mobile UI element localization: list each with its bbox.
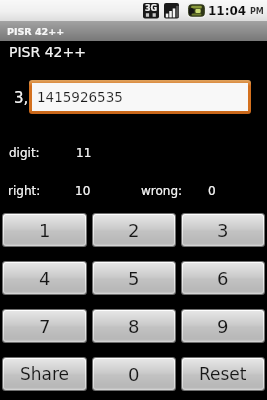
- staticText: 8: [128, 316, 140, 337]
- button[interactable]: 4: [4, 263, 85, 293]
- button[interactable]: 5: [94, 263, 174, 293]
- button[interactable]: 9: [183, 311, 263, 341]
- staticText: 0: [208, 184, 216, 198]
- staticText: 5: [128, 268, 140, 289]
- staticText: 7: [39, 316, 51, 337]
- button[interactable]: 0: [94, 359, 174, 389]
- staticText: PM: [250, 7, 264, 16]
- staticText: 3,: [14, 89, 29, 106]
- button[interactable]: 7: [4, 311, 85, 341]
- staticText: 10: [75, 184, 91, 198]
- staticText: 0: [128, 364, 140, 385]
- staticText: PISR 42++: [7, 26, 65, 37]
- staticText: digit:: [9, 146, 40, 160]
- button[interactable]: 3: [183, 215, 263, 245]
- button[interactable]: 1: [4, 215, 85, 245]
- staticText: 2: [128, 220, 140, 241]
- staticText: PISR 42++: [9, 44, 86, 60]
- staticText: right:: [8, 184, 41, 198]
- staticText: Share: [20, 364, 70, 384]
- staticText: 3G: [145, 4, 158, 13]
- staticText: 9: [217, 316, 229, 337]
- staticText: 6: [217, 268, 229, 289]
- button[interactable]: 1415926535: [32, 83, 248, 111]
- staticText: 4: [39, 268, 51, 289]
- staticText: wrong:: [141, 184, 183, 198]
- button[interactable]: 6: [183, 263, 263, 293]
- button[interactable]: 8: [94, 311, 174, 341]
- button[interactable]: 2: [94, 215, 174, 245]
- staticText: 1415926535: [37, 89, 123, 105]
- button[interactable]: Reset: [183, 359, 263, 389]
- staticText: 1: [39, 220, 51, 241]
- staticText: 11:04: [208, 4, 247, 18]
- staticText: 11: [76, 146, 92, 160]
- staticText: 3: [217, 220, 229, 241]
- button[interactable]: Share: [4, 359, 85, 389]
- staticText: Reset: [199, 364, 247, 384]
